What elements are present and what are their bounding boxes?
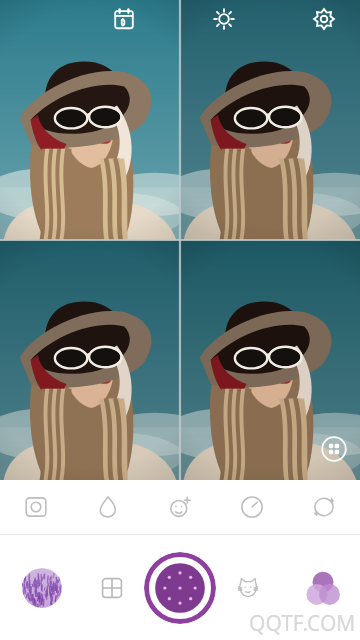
button[interactable]: Stickers (229, 569, 267, 607)
button[interactable]: Beauty (153, 480, 207, 534)
button[interactable]: Brightness (207, 2, 241, 36)
button[interactable]: Settings (307, 2, 341, 36)
button[interactable]: Adjust (81, 480, 135, 534)
button[interactable]: Camera (9, 480, 63, 534)
button[interactable]: Date stamp (107, 2, 141, 36)
button[interactable]: Filters (302, 567, 344, 609)
button[interactable]: Shutter (144, 552, 216, 624)
staticText: QQTF.COM (249, 609, 356, 638)
button[interactable]: Collage layout (321, 436, 347, 462)
button[interactable]: Timer (225, 480, 279, 534)
button[interactable]: Grid (93, 569, 131, 607)
button[interactable]: Switch camera (297, 480, 351, 534)
button[interactable]: Gallery (22, 568, 62, 608)
